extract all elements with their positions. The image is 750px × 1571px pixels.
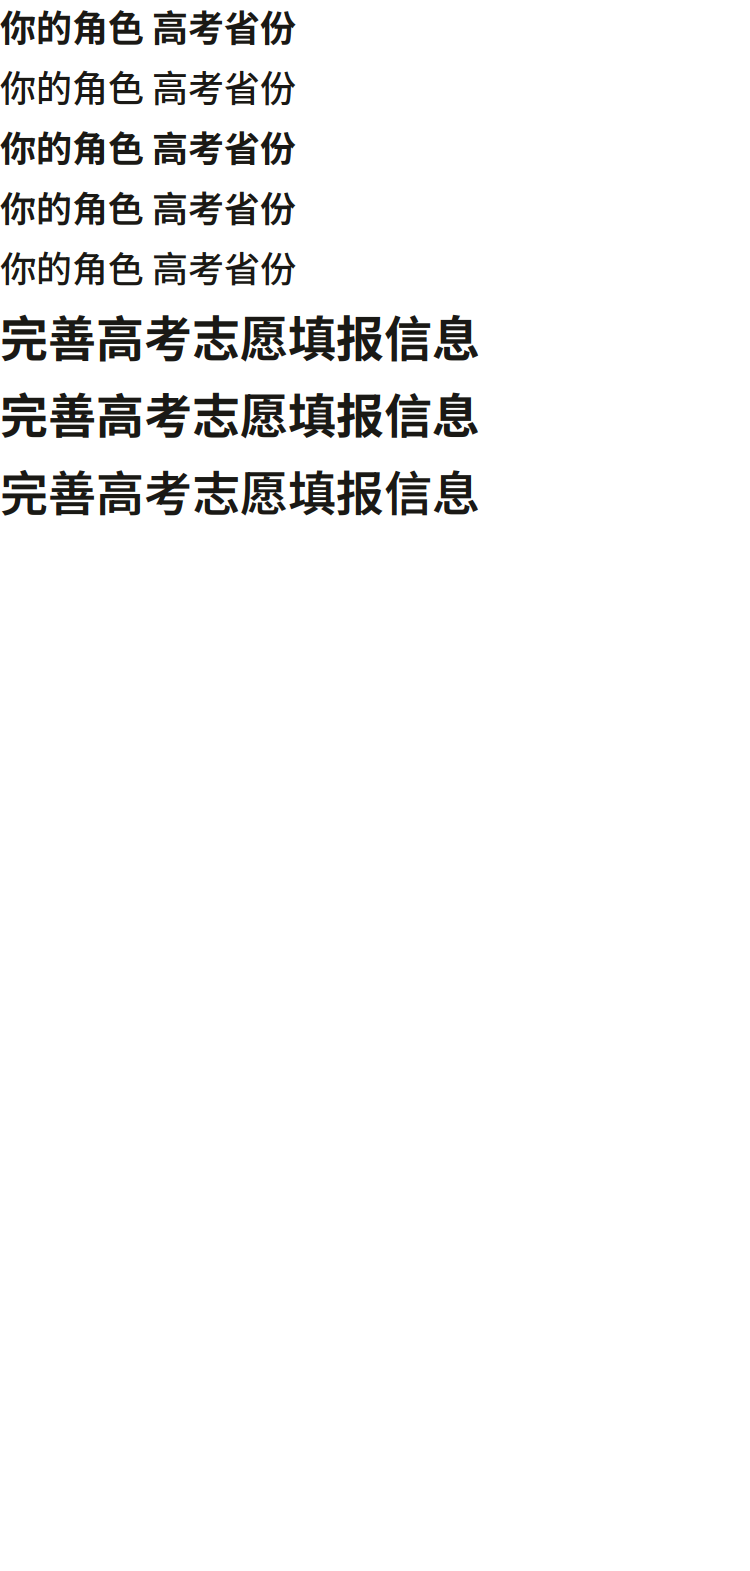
staticText: 你的角色 高考省份 <box>0 60 296 112</box>
staticText: 完善高考志愿填报信息 <box>0 378 480 448</box>
staticText: 你的角色 高考省份 <box>0 0 296 52</box>
staticText: 完善高考志愿填报信息 <box>0 301 480 370</box>
staticText: 你的角色 高考省份 <box>0 120 296 172</box>
staticText: 你的角色 高考省份 <box>0 240 296 293</box>
staticText: 完善高考志愿填报信息 <box>0 456 480 525</box>
staticText: 你的角色 高考省份 <box>0 180 296 232</box>
